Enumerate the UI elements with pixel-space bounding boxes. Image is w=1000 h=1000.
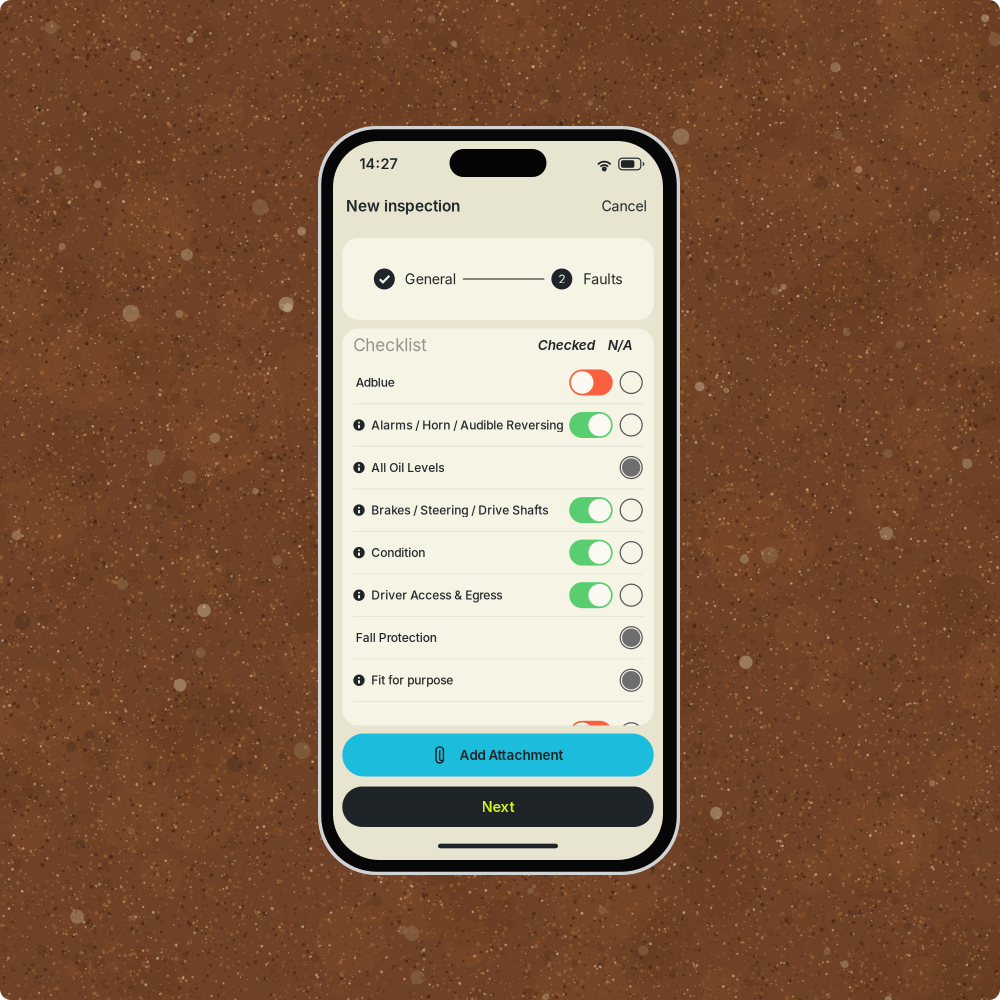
staticText: Driver Access & Egress <box>371 588 502 602</box>
button[interactable]: Add Attachment <box>342 733 654 776</box>
button[interactable]: Brakes / Steering / Drive Shafts <box>342 489 654 531</box>
staticText: Fire Extinguisher <box>371 726 465 741</box>
staticText: New inspection <box>346 197 460 215</box>
button[interactable]: Next <box>342 786 654 827</box>
button[interactable]: Condition <box>342 532 654 573</box>
staticText: Adblue <box>356 375 395 390</box>
staticText: Alarms / Horn / Audible Reversing <box>371 418 563 432</box>
staticText: 14:27 <box>359 155 397 173</box>
staticText: 2 <box>558 272 565 286</box>
staticText: Brakes / Steering / Drive Shafts <box>371 503 548 517</box>
button[interactable]: Alarms / Horn / Audible Reversing <box>342 404 654 446</box>
button[interactable]: Driver Access & Egress <box>342 574 654 616</box>
staticText: Checked <box>538 337 595 353</box>
staticText: Fit for purpose <box>371 673 453 687</box>
button[interactable]: General <box>374 268 456 289</box>
staticText: Faults <box>583 270 622 287</box>
staticText: Checklist <box>353 335 427 355</box>
staticText: Cancel <box>601 197 646 214</box>
button[interactable]: 2 <box>551 268 622 289</box>
button[interactable]: Fire Extinguisher <box>342 702 654 743</box>
button[interactable]: Fit for purpose <box>342 659 654 701</box>
staticText: Next <box>481 798 514 816</box>
staticText: All Oil Levels <box>371 460 444 475</box>
staticText: N/A <box>608 337 633 353</box>
button[interactable]: Cancel <box>601 197 646 214</box>
button[interactable]: Adblue <box>342 362 654 403</box>
staticText: Fall Protection <box>356 630 437 645</box>
staticText: Add Attachment <box>459 747 563 763</box>
staticText: Condition <box>371 545 425 560</box>
staticText: General <box>405 270 456 287</box>
button[interactable]: Fall Protection <box>342 617 654 658</box>
button[interactable]: All Oil Levels <box>342 447 654 488</box>
